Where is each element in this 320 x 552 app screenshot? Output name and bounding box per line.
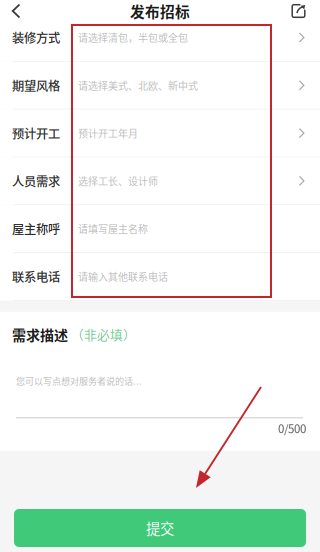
staticText: 预计开工 [12, 124, 60, 142]
staticText: 提交 [146, 518, 174, 538]
button[interactable]: 联系电话 [0, 253, 320, 301]
staticText: 发布招标 [130, 0, 190, 22]
button[interactable]: Share [281, 0, 320, 22]
button[interactable]: 人员需求 [0, 157, 320, 205]
staticText: 请选择美式、北欧、新中式 [78, 78, 198, 93]
staticText: 您可以写点想对服务者说的话... [16, 374, 142, 387]
staticText: 屋主称呼 [12, 220, 60, 238]
button[interactable]: 提交 [14, 509, 306, 547]
staticText: 预计开工年月 [78, 126, 138, 140]
button[interactable]: 期望风格 [0, 62, 320, 110]
staticText: 请输入其他联系电话 [78, 269, 168, 284]
button[interactable]: 屋主称呼 [0, 205, 320, 253]
staticText: 请选择清包，半包或全包 [78, 30, 188, 45]
staticText: 0/500 [278, 420, 306, 436]
button[interactable]: 装修方式 [0, 14, 320, 62]
staticText: （非必填） [71, 325, 136, 343]
staticText: 选择工长、设计师 [78, 174, 158, 188]
staticText: 需求描述 [12, 324, 68, 344]
staticText: 期望风格 [12, 76, 60, 94]
staticText: 联系电话 [12, 268, 60, 285]
staticText: 装修方式 [12, 29, 60, 46]
button[interactable]: Back [0, 0, 31, 22]
button[interactable]: 预计开工 [0, 110, 320, 157]
staticText: 人员需求 [12, 172, 60, 190]
staticText: 请填写屋主名称 [78, 221, 148, 236]
